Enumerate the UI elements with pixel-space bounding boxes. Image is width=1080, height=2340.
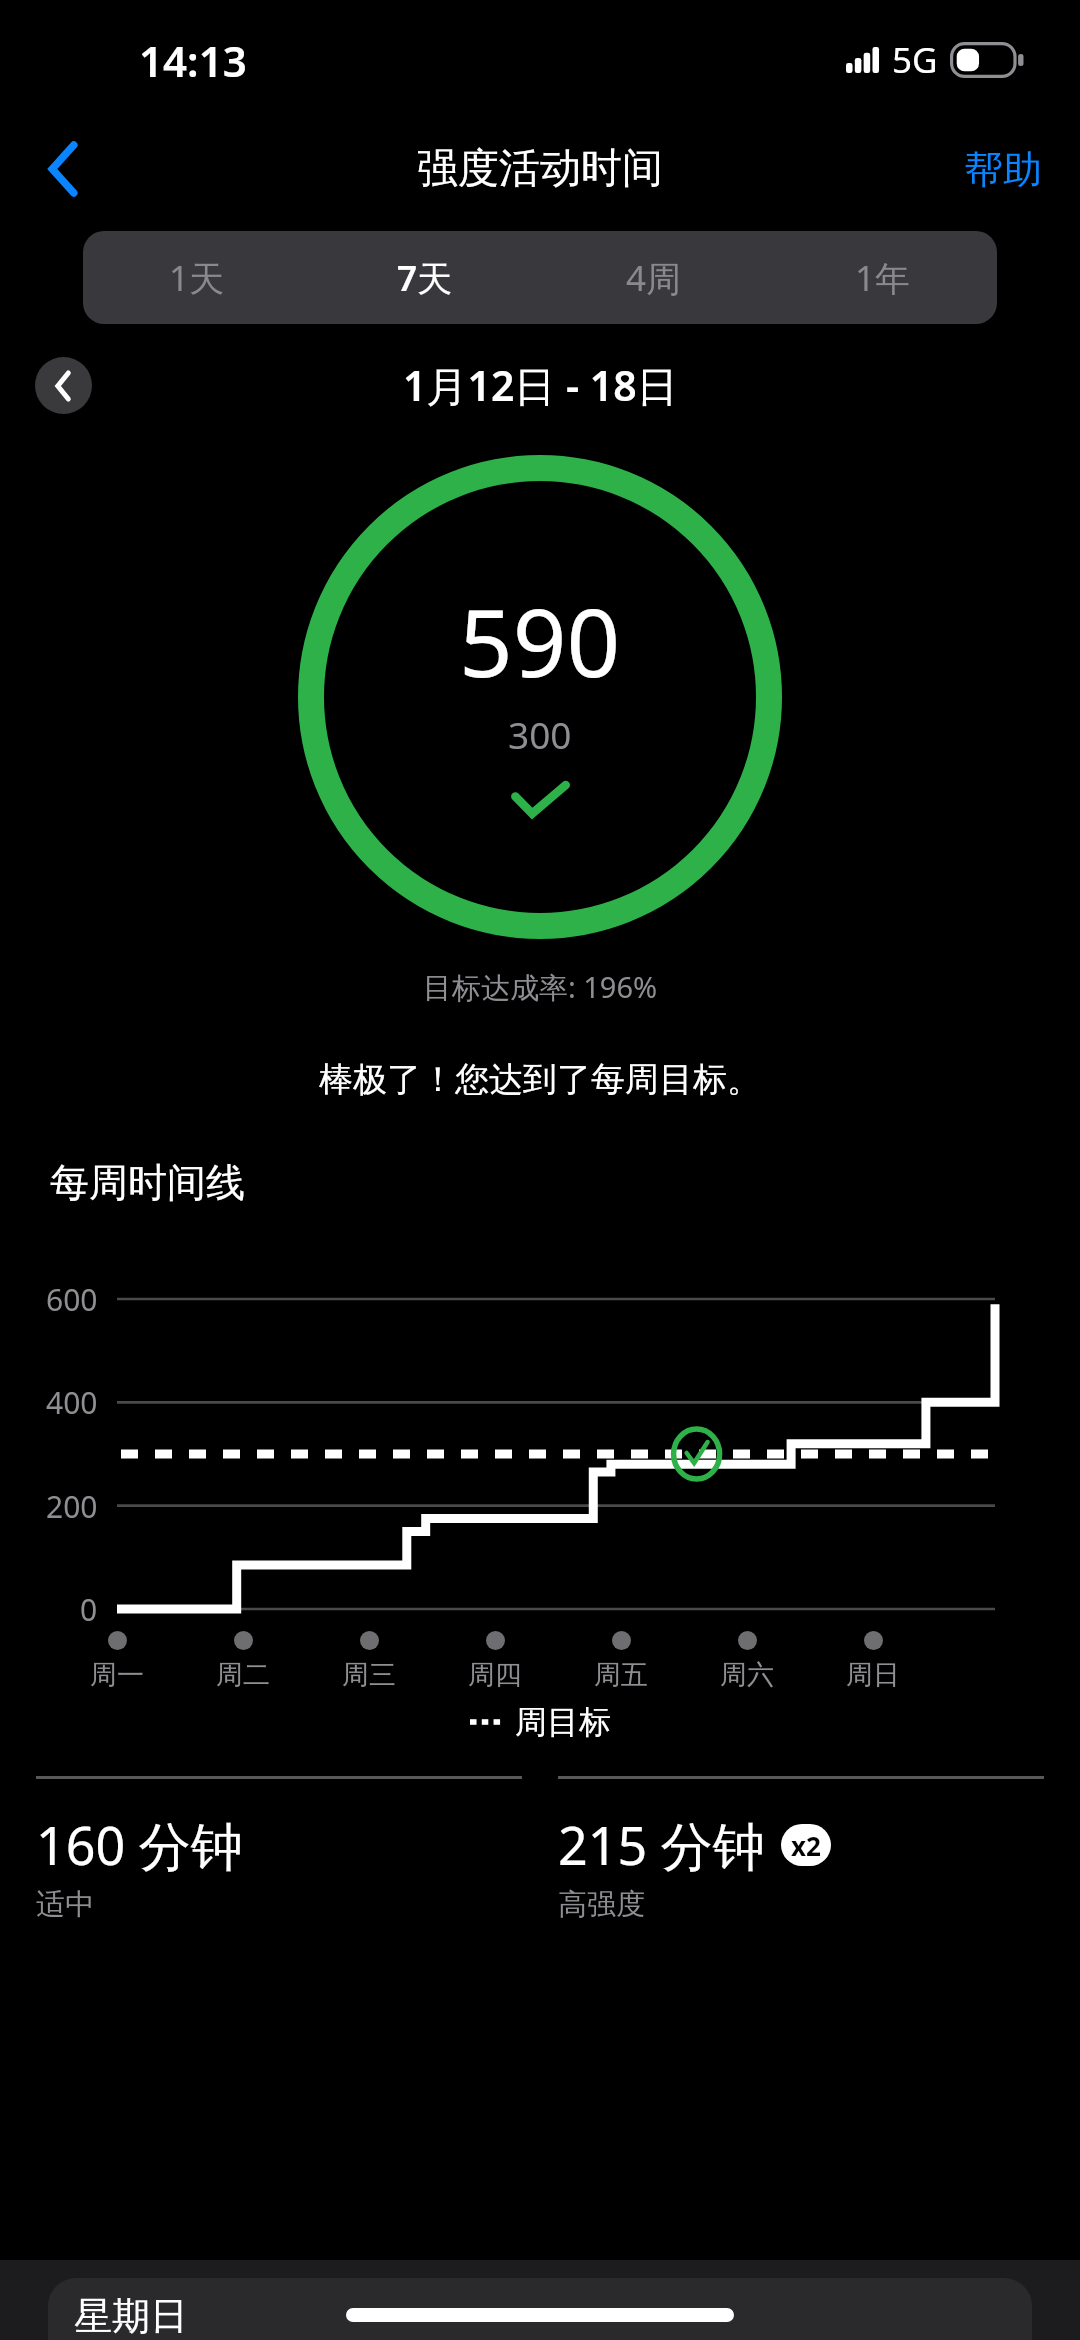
button[interactable]: 1天 xyxy=(83,231,311,324)
staticText: 适中 xyxy=(36,1886,94,1923)
staticText: 强度活动时间 xyxy=(417,143,663,195)
staticText: 0 xyxy=(80,1589,98,1630)
staticText: 周目标 xyxy=(515,1702,611,1742)
staticText: 每周时间线 xyxy=(50,1158,245,1207)
staticText: 215 分钟 xyxy=(558,1809,765,1880)
staticText: 棒极了！您达到了每周目标。 xyxy=(0,1058,1080,1101)
button[interactable]: 160 分钟 xyxy=(36,1776,522,1923)
staticText: 1年 xyxy=(855,254,911,302)
staticText: 5G xyxy=(892,36,938,84)
staticText: 周六 xyxy=(720,1658,774,1692)
staticText: 目标达成率: 196% xyxy=(0,967,1080,1007)
staticText: 周三 xyxy=(342,1658,396,1692)
staticText: 周四 xyxy=(468,1658,522,1692)
button[interactable]: 帮助 xyxy=(926,131,1080,208)
button[interactable]: 1年 xyxy=(768,231,997,324)
staticText: 周五 xyxy=(594,1658,648,1692)
staticText: 4周 xyxy=(626,254,682,302)
staticText: 高强度 xyxy=(558,1886,645,1923)
button[interactable]: 4周 xyxy=(539,231,768,324)
staticText: 600 xyxy=(46,1279,98,1320)
staticText: 帮助 xyxy=(964,145,1042,194)
button[interactable]: 星期日 xyxy=(48,2278,1032,2340)
button[interactable]: 返回 xyxy=(26,131,102,207)
button[interactable]: 215 分钟 xyxy=(558,1776,1044,1923)
staticText: 14:13 xyxy=(139,32,247,89)
staticText: 200 xyxy=(46,1486,98,1527)
staticText: 300 xyxy=(508,709,572,759)
button[interactable]: 上一周 xyxy=(35,357,92,414)
staticText: 7天 xyxy=(397,254,453,302)
staticText: 周一 xyxy=(90,1658,144,1692)
staticText: 星期日 xyxy=(74,2292,188,2340)
staticText: 周日 xyxy=(846,1658,900,1692)
button[interactable]: 7天 xyxy=(311,231,539,324)
staticText: 400 xyxy=(46,1382,98,1423)
staticText: 1天 xyxy=(169,254,225,302)
staticText: 160 分钟 xyxy=(36,1809,243,1880)
staticText: 1月12日 - 18日 xyxy=(403,357,678,413)
staticText: x2 xyxy=(791,1828,821,1863)
staticText: 590 xyxy=(459,577,621,705)
staticText: 周二 xyxy=(216,1658,270,1692)
